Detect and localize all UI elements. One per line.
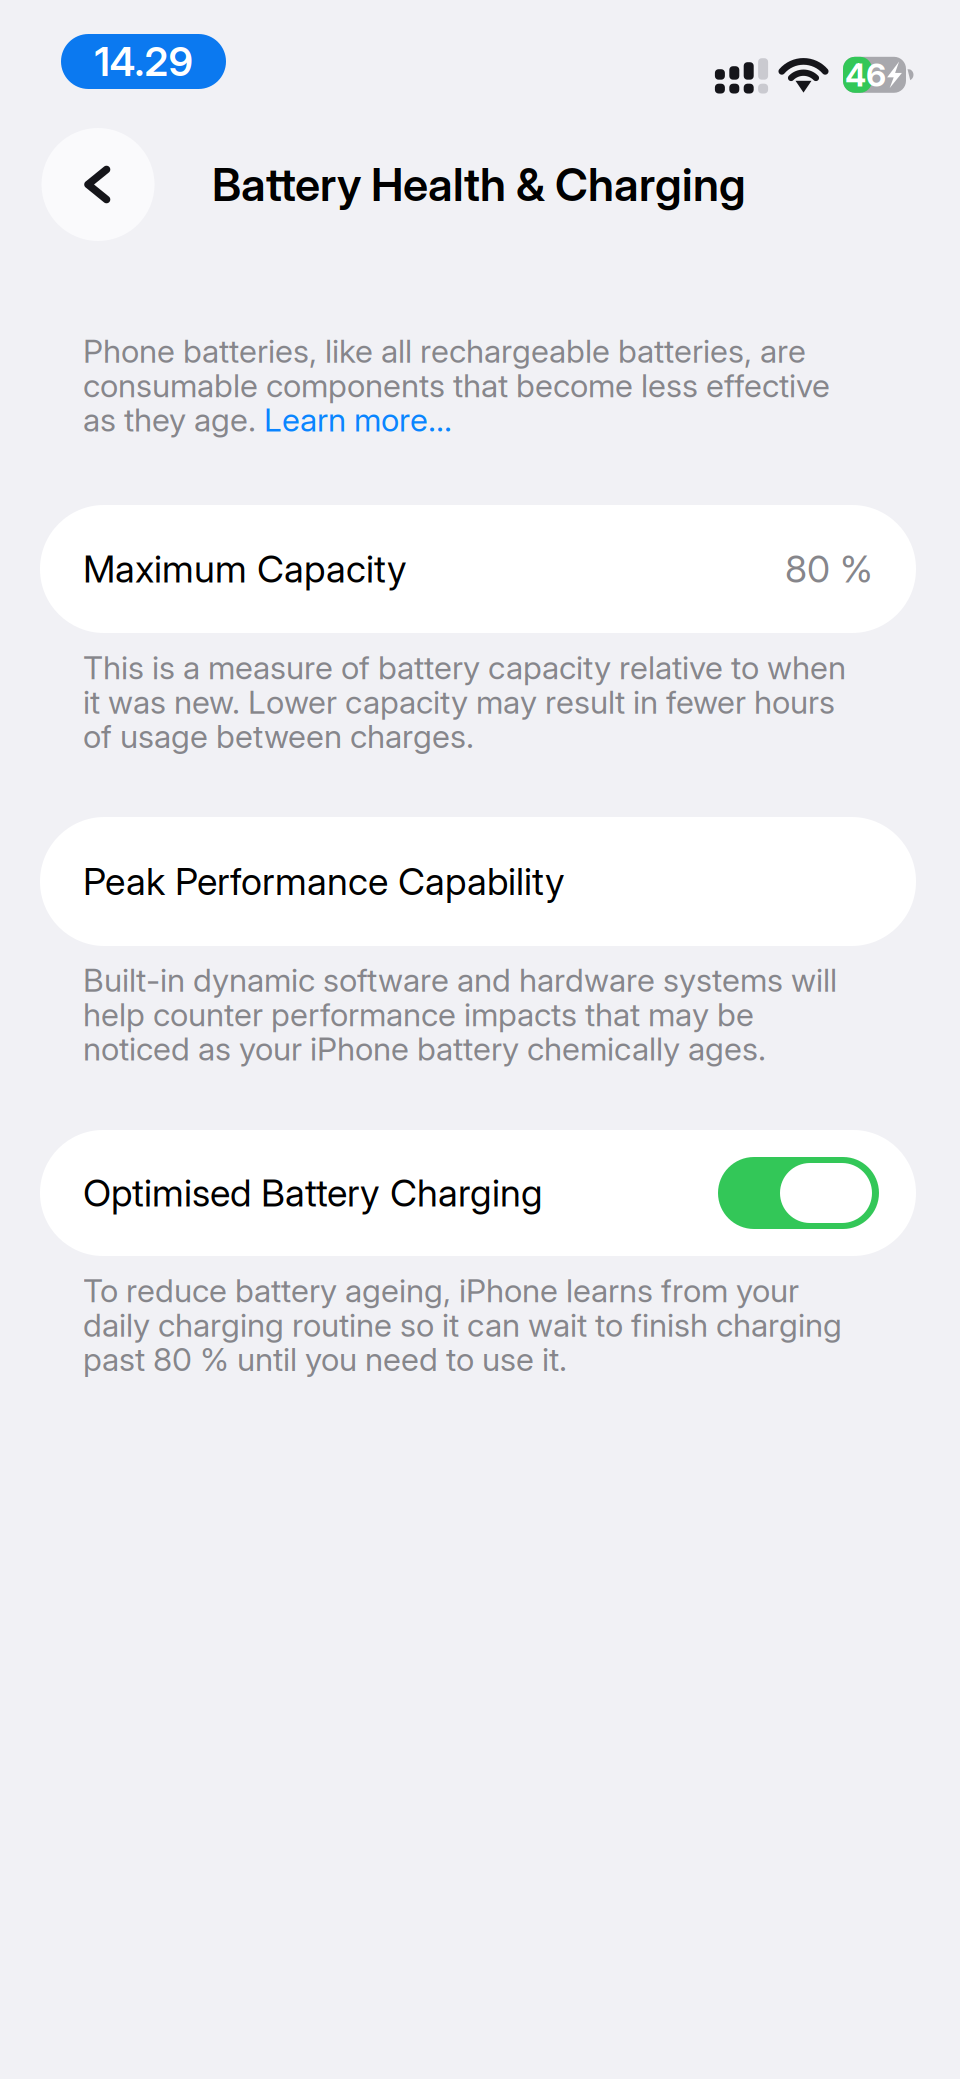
button[interactable]: Peak Performance Capability	[40, 817, 916, 946]
button[interactable]: Back	[41, 128, 154, 241]
staticText: This is a measure of battery capacity re…	[83, 650, 846, 754]
staticText: Battery Health & Charging	[212, 157, 746, 212]
staticText: 14.29	[94, 38, 192, 85]
staticText: Built-in dynamic software and hardware s…	[83, 963, 837, 1066]
staticText: Optimised Battery Charging	[83, 1171, 543, 1215]
staticText: Peak Performance Capability	[83, 859, 565, 903]
button[interactable]: Maximum Capacity	[40, 505, 916, 633]
staticText: Phone batteries, like all rechargeable b…	[83, 334, 830, 437]
staticText: Maximum Capacity	[83, 547, 407, 591]
staticText: To reduce battery ageing, iPhone learns …	[83, 1273, 842, 1377]
button[interactable]: Optimised Battery Charging	[40, 1130, 916, 1256]
staticText: 80 %	[785, 547, 873, 591]
staticText: 46	[845, 56, 886, 94]
